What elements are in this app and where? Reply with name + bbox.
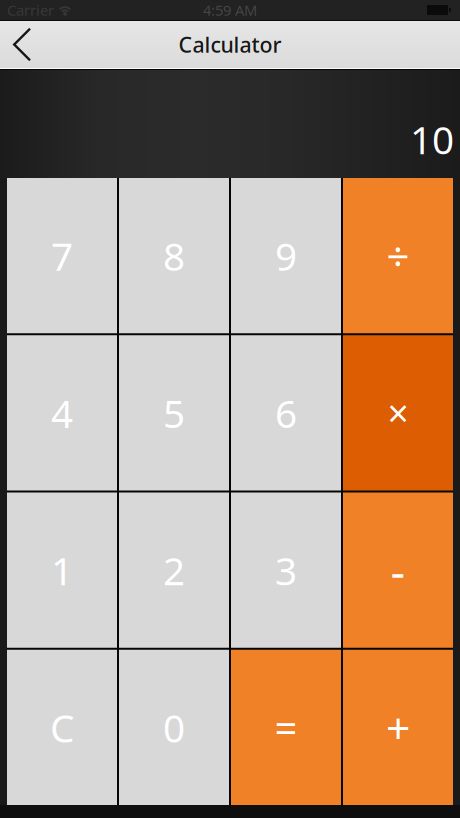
staticText: 8 [163,230,185,281]
staticText: Carrier [7,0,54,20]
staticText: 3 [275,544,297,596]
staticText: 0 [163,702,185,753]
staticText: 4:59 AM [203,0,257,20]
staticText: 5 [163,387,185,438]
button[interactable]: 5 [119,335,229,490]
button[interactable]: C [7,650,117,805]
staticText: + [386,699,410,756]
staticText: 2 [163,544,185,596]
button[interactable]: 3 [231,492,341,648]
staticText: 9 [275,230,297,281]
button[interactable]: 7 [7,178,117,333]
staticText: C [50,702,74,753]
button[interactable]: 8 [119,178,229,333]
staticText: × [387,388,408,438]
button[interactable]: = [231,650,341,805]
staticText: = [274,701,297,754]
button[interactable]: ÷ [343,178,453,333]
button[interactable]: + [343,650,453,805]
staticText: 7 [51,230,73,281]
button[interactable]: 9 [231,178,341,333]
staticText: ÷ [386,229,409,282]
button[interactable]: 1 [7,492,117,648]
button[interactable]: 0 [119,650,229,805]
button[interactable]: - [343,492,453,648]
staticText: 4 [51,387,73,438]
staticText: 1 [51,544,73,596]
button[interactable]: 2 [119,492,229,648]
button[interactable]: 4 [7,335,117,490]
button[interactable]: Back [0,21,53,68]
staticText: 10 [410,114,454,165]
staticText: Calculator [178,30,281,59]
staticText: - [390,540,405,600]
staticText: 6 [275,387,297,438]
button[interactable]: 6 [231,335,341,490]
button[interactable]: × [343,335,453,490]
